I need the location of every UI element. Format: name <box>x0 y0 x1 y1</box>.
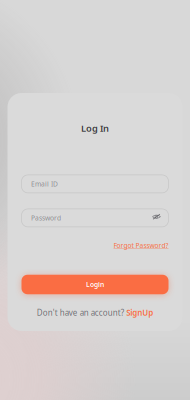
button[interactable]: Login <box>21 275 168 294</box>
staticText: Forgot Password? <box>113 241 168 250</box>
staticText: Login <box>86 280 104 289</box>
staticText: SignUp <box>126 307 153 318</box>
staticText: Log In <box>81 122 109 134</box>
staticText: Password <box>31 213 61 222</box>
button[interactable]: Forgot Password? <box>113 241 168 250</box>
button[interactable]: SignUp <box>126 307 153 318</box>
staticText: Email ID <box>31 179 58 188</box>
staticText: Don't have an account? <box>37 307 124 318</box>
